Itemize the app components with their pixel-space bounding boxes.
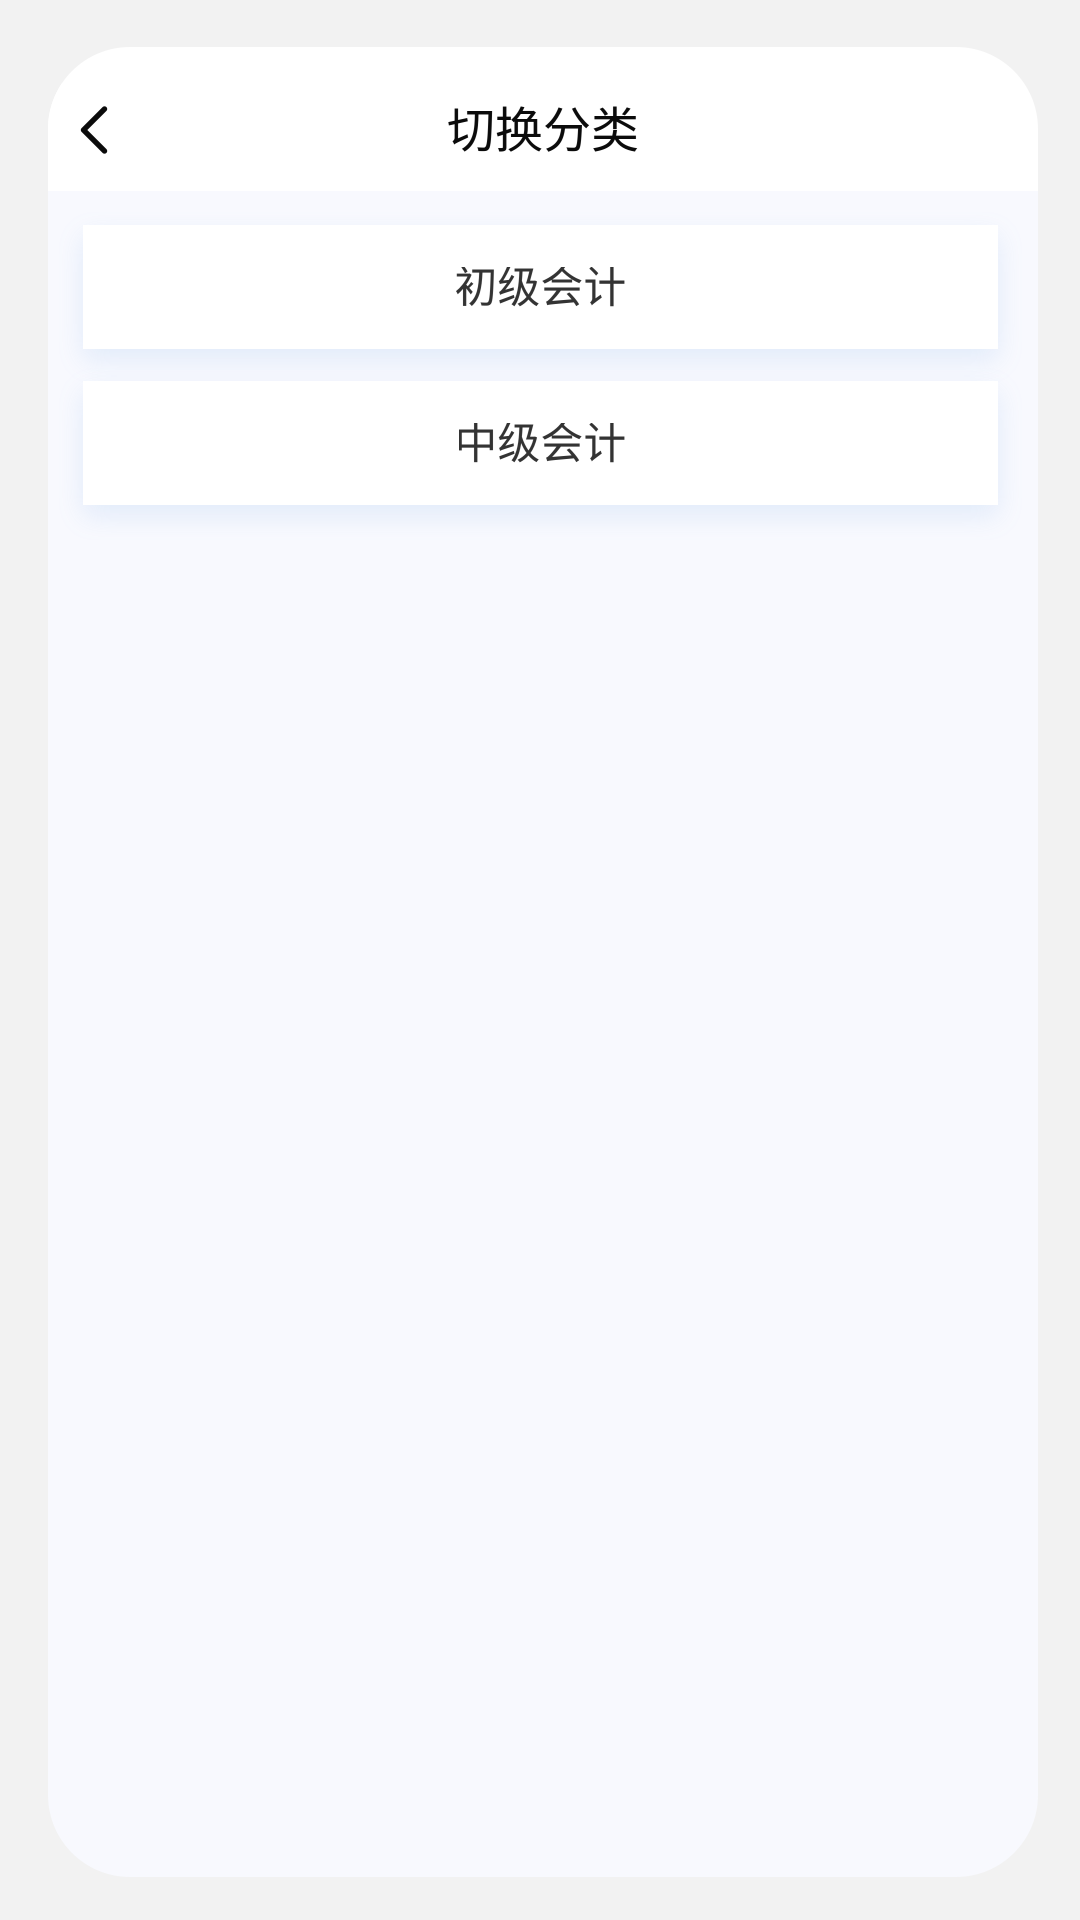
staticText: 切换分类 xyxy=(447,91,639,161)
staticText: 中级会计 xyxy=(454,409,626,471)
button[interactable]: 中级会计 xyxy=(83,381,998,505)
staticText: 初级会计 xyxy=(454,253,626,315)
button[interactable]: Back xyxy=(48,83,140,177)
button[interactable]: 初级会计 xyxy=(83,225,998,349)
